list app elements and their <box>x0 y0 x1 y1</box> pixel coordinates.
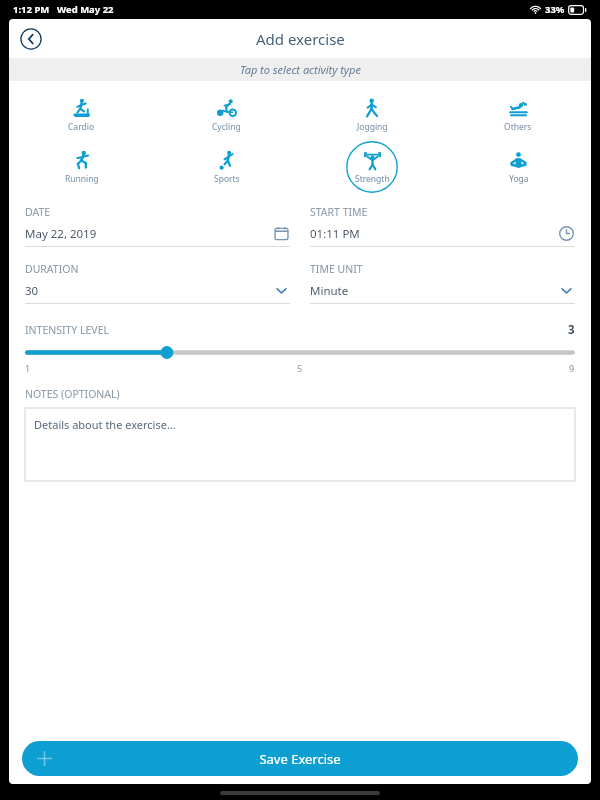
staticText: 01:11 PM <box>310 226 558 242</box>
staticText: NOTES (OPTIONAL) <box>25 387 120 401</box>
staticText: 30 <box>25 283 273 299</box>
staticText: DATE <box>25 205 51 219</box>
staticText: START TIME <box>310 205 368 219</box>
staticText: 1:12 PM <box>13 3 50 16</box>
staticText: Minute <box>310 283 558 299</box>
staticText: Wed May 22 <box>57 3 114 16</box>
button[interactable]: Running <box>9 141 154 193</box>
staticText: 9 <box>569 362 575 374</box>
button[interactable]: Cardio <box>9 89 154 141</box>
staticText: Details about the exercise... <box>34 417 176 432</box>
staticText: INTENSITY LEVEL <box>25 323 568 337</box>
button[interactable]: TIME UNIT <box>310 262 575 304</box>
button[interactable]: Strength <box>299 141 445 193</box>
button[interactable]: DURATION <box>25 262 290 304</box>
button[interactable]: Cycling <box>154 89 299 141</box>
staticText: TIME UNIT <box>310 262 363 276</box>
staticText: 33% <box>545 3 565 16</box>
staticText: Sports <box>214 173 240 185</box>
staticText: Tap to select activity type <box>240 62 361 77</box>
button[interactable]: Jogging <box>299 89 445 141</box>
staticText: Save Exercise <box>259 750 341 768</box>
staticText: Others <box>504 121 532 133</box>
button[interactable]: DATE <box>25 205 290 247</box>
staticText: Add exercise <box>256 29 345 49</box>
staticText: 3 <box>568 322 575 338</box>
button[interactable]: Others <box>445 89 591 141</box>
staticText: May 22, 2019 <box>25 226 273 242</box>
button[interactable]: Intensity level slider <box>25 345 575 360</box>
staticText: Running <box>65 173 99 185</box>
button[interactable]: Sports <box>154 141 299 193</box>
staticText: 5 <box>297 362 303 374</box>
button[interactable]: Save Exercise <box>22 741 578 776</box>
button[interactable]: Details about the exercise... <box>25 408 575 481</box>
staticText: Yoga <box>509 173 529 185</box>
button[interactable]: Back <box>13 21 49 57</box>
staticText: Strength <box>355 173 390 185</box>
button[interactable]: Tap to select activity type <box>9 58 591 81</box>
staticText: Jogging <box>357 121 388 133</box>
staticText: DURATION <box>25 262 79 276</box>
button[interactable]: Yoga <box>445 141 591 193</box>
staticText: 1 <box>25 362 31 374</box>
staticText: Cycling <box>212 121 241 133</box>
staticText: Cardio <box>68 121 95 133</box>
button[interactable]: START TIME <box>310 205 575 247</box>
